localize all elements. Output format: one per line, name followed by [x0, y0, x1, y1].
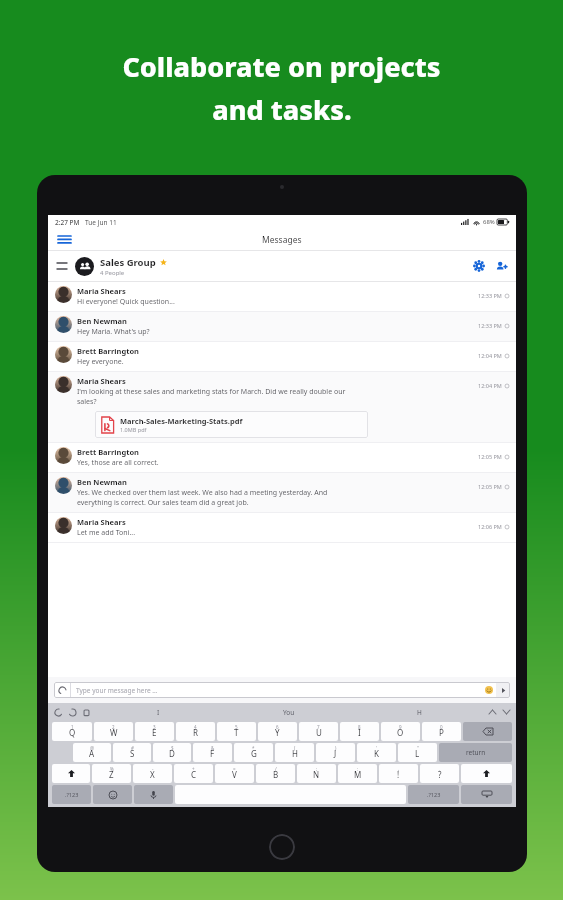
button[interactable]: @: [73, 743, 111, 762]
button[interactable]: Previous: [485, 705, 499, 719]
button[interactable]: 0: [422, 722, 461, 741]
button[interactable]: 6: [258, 722, 297, 741]
button[interactable]: Add person: [492, 257, 510, 275]
button[interactable]: ': [357, 743, 396, 762]
button[interactable]: =: [215, 764, 254, 783]
button[interactable]: Next: [499, 705, 513, 719]
button[interactable]: %: [92, 764, 131, 783]
button[interactable]: Emoji: [482, 683, 496, 697]
button[interactable]: :: [338, 764, 377, 783]
staticText: Yes. We checked over them last week. We …: [77, 488, 328, 498]
staticText: =: [233, 766, 236, 772]
button[interactable]: 3: [135, 722, 174, 741]
button[interactable]: 2: [94, 722, 133, 741]
button[interactable]: Menu: [54, 230, 74, 250]
button[interactable]: Brett Barrington: [48, 443, 516, 472]
button[interactable]: Key: [52, 785, 91, 804]
staticText: Hi everyone! Quick question...: [77, 297, 175, 307]
button[interactable]: Settings: [470, 257, 488, 275]
button[interactable]: ;: [297, 764, 336, 783]
button[interactable]: $: [153, 743, 191, 762]
staticText: ": [417, 745, 419, 751]
staticText: F: [210, 748, 215, 759]
staticText: ): [335, 745, 337, 751]
button[interactable]: Ben Newman: [48, 473, 516, 512]
button[interactable]: 1: [52, 722, 92, 741]
staticText: Ben Newman: [77, 316, 127, 326]
staticText: Brett Barrington: [77, 447, 139, 457]
staticText: and tasks.: [212, 91, 352, 128]
button[interactable]: /: [256, 764, 295, 783]
staticText: /: [275, 766, 277, 772]
staticText: *: [252, 745, 255, 751]
staticText: return: [466, 748, 486, 757]
staticText: Maria Shears: [77, 376, 126, 386]
staticText: Let me add Toni...: [77, 528, 136, 538]
button[interactable]: &: [193, 743, 232, 762]
button[interactable]: Key: [93, 785, 132, 804]
button[interactable]: (: [275, 743, 314, 762]
button[interactable]: 5: [217, 722, 256, 741]
button[interactable]: Attach: [54, 682, 70, 698]
button[interactable]: .: [420, 764, 459, 783]
button[interactable]: I: [93, 705, 223, 719]
staticText: Hey Maria. What's up?: [77, 327, 150, 337]
staticText: Z: [109, 769, 114, 780]
button[interactable]: 9: [381, 722, 420, 741]
staticText: 7: [317, 724, 320, 730]
button[interactable]: Key: [463, 722, 512, 741]
button[interactable]: +: [174, 764, 213, 783]
staticText: Sales Group: [100, 256, 156, 269]
button[interactable]: Key: [408, 785, 459, 804]
button[interactable]: List: [54, 258, 70, 274]
button[interactable]: redo: [65, 705, 79, 719]
button[interactable]: Maria Shears: [48, 513, 516, 542]
button[interactable]: March-Sales-Marketing-Stats.pdf: [95, 411, 368, 438]
button[interactable]: Shift: [461, 764, 512, 783]
button[interactable]: Key: [134, 785, 173, 804]
button[interactable]: 8: [340, 722, 379, 741]
staticText: 1.0MB pdf: [120, 426, 147, 433]
button[interactable]: 7: [299, 722, 338, 741]
staticText: :: [357, 766, 359, 772]
button[interactable]: Maria Shears: [48, 372, 516, 442]
button[interactable]: *: [234, 743, 273, 762]
staticText: -: [152, 766, 154, 772]
button[interactable]: Brett Barrington: [48, 342, 516, 371]
staticText: L: [415, 748, 420, 759]
button[interactable]: ": [398, 743, 437, 762]
staticText: You: [283, 708, 295, 717]
button[interactable]: ): [316, 743, 355, 762]
staticText: (: [294, 745, 296, 751]
staticText: S: [130, 748, 135, 759]
button[interactable]: H: [354, 705, 485, 719]
button[interactable]: ,: [379, 764, 418, 783]
staticText: !: [397, 769, 400, 780]
button[interactable]: #: [113, 743, 151, 762]
button[interactable]: 4: [176, 722, 215, 741]
staticText: 8: [358, 724, 361, 730]
staticText: U: [316, 727, 322, 738]
button[interactable]: Ben Newman: [48, 312, 516, 341]
staticText: Brett Barrington: [77, 346, 139, 356]
staticText: 5: [235, 724, 238, 730]
button[interactable]: Key: [461, 785, 512, 804]
button[interactable]: Key: [439, 743, 512, 762]
staticText: V: [232, 769, 237, 780]
staticText: Tue Jun 11: [85, 218, 117, 227]
staticText: 3: [153, 724, 156, 730]
button[interactable]: You: [223, 705, 354, 719]
button[interactable]: Maria Shears: [48, 282, 516, 311]
staticText: Hey everyone.: [77, 357, 124, 367]
staticText: N: [313, 769, 320, 780]
button[interactable]: undo: [51, 705, 65, 719]
button[interactable]: Send: [496, 682, 510, 698]
button[interactable]: Shift: [52, 764, 90, 783]
staticText: 4: [194, 724, 197, 730]
button[interactable]: paste: [79, 705, 93, 719]
button[interactable]: -: [133, 764, 172, 783]
staticText: 1: [71, 724, 74, 730]
staticText: Y: [275, 727, 280, 738]
staticText: B: [273, 769, 279, 780]
